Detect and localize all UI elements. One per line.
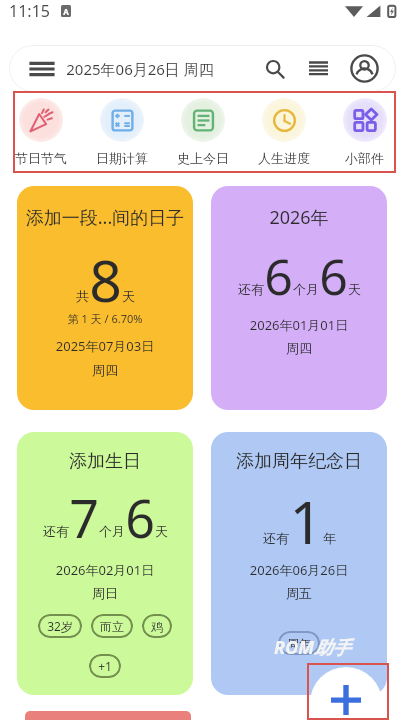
button[interactable]: 添加生日: [17, 432, 193, 695]
staticText: 6: [125, 482, 155, 553]
button[interactable]: 节日节气: [0, 98, 81, 166]
staticText: 还有: [263, 530, 289, 546]
staticText: 日期计算: [96, 150, 148, 166]
button[interactable]: Navigation menu: [9, 45, 396, 92]
staticText: 还有: [238, 281, 264, 297]
button[interactable]: 人生进度: [243, 98, 324, 166]
staticText: 人生进度: [258, 150, 310, 166]
button[interactable]: 史上今日: [162, 98, 243, 166]
staticText: 1: [289, 482, 323, 561]
staticText: 天: [348, 281, 361, 297]
staticText: 6: [319, 242, 348, 310]
staticText: 32岁: [47, 618, 73, 634]
button[interactable]: Add: [310, 667, 382, 720]
staticText: 小部件: [345, 150, 384, 166]
staticText: +1: [98, 658, 112, 674]
staticText: 第 1 天 / 6.70%: [17, 311, 193, 326]
button[interactable]: 添加一段...间的日子: [17, 186, 193, 410]
staticText: A: [63, 6, 69, 17]
staticText: 2026年: [211, 205, 387, 230]
staticText: 天: [122, 288, 135, 304]
staticText: 周五: [211, 585, 387, 601]
staticText: 个月: [99, 523, 125, 539]
staticText: 天: [155, 523, 168, 539]
staticText: 11:15: [9, 0, 50, 22]
button[interactable]: 添加周年纪念日: [211, 432, 387, 695]
staticText: 2025年07月03日: [17, 337, 193, 355]
other: Navigation menu: [31, 61, 53, 77]
staticText: 6: [264, 242, 293, 310]
other: List view: [309, 61, 328, 76]
staticText: 添加周年纪念日: [211, 450, 387, 473]
staticText: 个月: [293, 281, 319, 297]
staticText: 而立: [100, 619, 124, 634]
button[interactable]: 而立: [91, 614, 133, 638]
staticText: 添加一段...间的日子: [17, 205, 193, 230]
staticText: 共: [76, 288, 89, 304]
staticText: 8: [89, 241, 122, 319]
staticText: 史上今日: [177, 150, 229, 166]
button[interactable]: 32岁: [38, 614, 82, 638]
button[interactable]: 周年: [278, 631, 320, 655]
staticText: 节日节气: [15, 150, 67, 166]
other: Profile: [350, 54, 379, 83]
staticText: 鸡: [151, 619, 163, 634]
staticText: 年: [323, 530, 336, 546]
staticText: 2026年01月01日: [211, 316, 387, 334]
staticText: 2025年06月26日 周四: [66, 59, 214, 79]
other: Search: [265, 59, 285, 79]
staticText: 还有: [43, 523, 69, 539]
staticText: ROM助手: [274, 635, 351, 660]
staticText: 添加生日: [17, 450, 193, 473]
button[interactable]: 小部件: [324, 98, 405, 166]
staticText: 周四: [17, 362, 193, 378]
button[interactable]: +1: [89, 654, 121, 678]
staticText: 2026年02月01日: [17, 561, 193, 579]
button[interactable]: 2026年: [211, 186, 387, 410]
staticText: 周日: [17, 585, 193, 601]
button[interactable]: 日期计算: [81, 98, 162, 166]
staticText: 周四: [211, 340, 387, 356]
staticText: 周年: [287, 636, 311, 651]
button[interactable]: 鸡: [142, 614, 172, 638]
staticText: 7: [69, 482, 99, 553]
staticText: 2026年06月26日: [211, 561, 387, 579]
